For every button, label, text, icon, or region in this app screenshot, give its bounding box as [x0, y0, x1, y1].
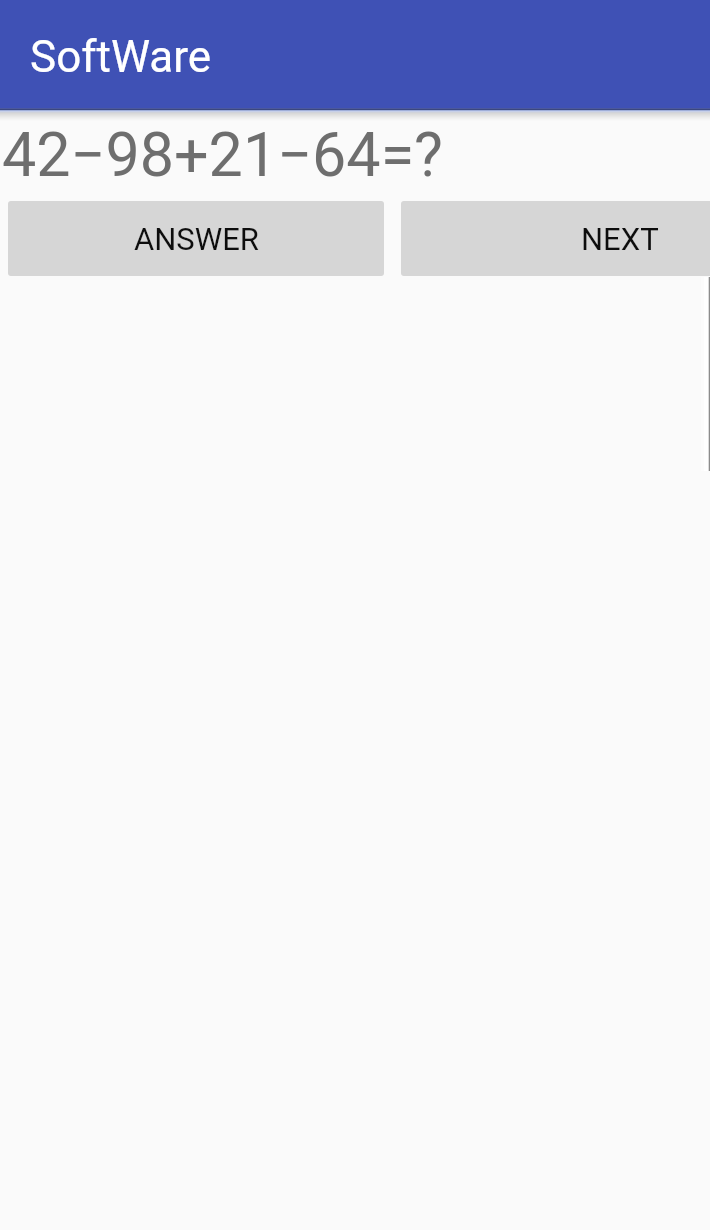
other: Scroll position: [701, 277, 710, 471]
button[interactable]: SoftWare: [0, 0, 710, 108]
staticText: 42−98+21−64=?: [2, 119, 443, 190]
staticText: NEXT: [581, 221, 659, 257]
button[interactable]: ANSWER: [8, 201, 384, 276]
button[interactable]: NEXT: [401, 201, 710, 276]
staticText: ANSWER: [134, 221, 259, 257]
staticText: SoftWare: [30, 31, 212, 83]
